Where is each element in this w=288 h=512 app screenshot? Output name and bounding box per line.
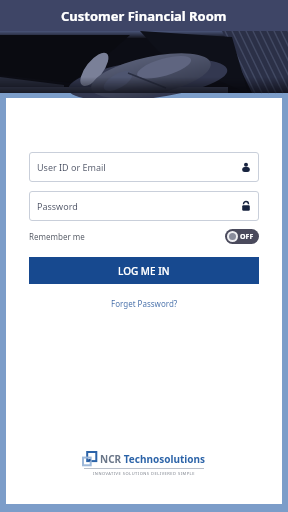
staticText: OFF bbox=[240, 232, 254, 242]
staticText: NCR Technosolutions bbox=[100, 452, 206, 466]
staticText: Password bbox=[37, 200, 78, 212]
button[interactable]: OFF bbox=[225, 229, 259, 244]
staticText: Forget Password? bbox=[111, 298, 178, 309]
staticText: INNOVATIVE SOLUTIONS DELIVERED SIMPLE bbox=[93, 471, 195, 476]
button[interactable]: LOG ME IN bbox=[29, 257, 259, 284]
staticText: Remember me bbox=[29, 231, 85, 242]
button[interactable]: User ID or Email bbox=[29, 152, 259, 182]
button[interactable]: Password bbox=[29, 191, 259, 221]
staticText: User ID or Email bbox=[37, 161, 106, 173]
staticText: LOG ME IN bbox=[118, 264, 170, 278]
button[interactable]: Forget Password? bbox=[111, 298, 178, 309]
staticText: Customer Financial Room bbox=[61, 7, 227, 25]
